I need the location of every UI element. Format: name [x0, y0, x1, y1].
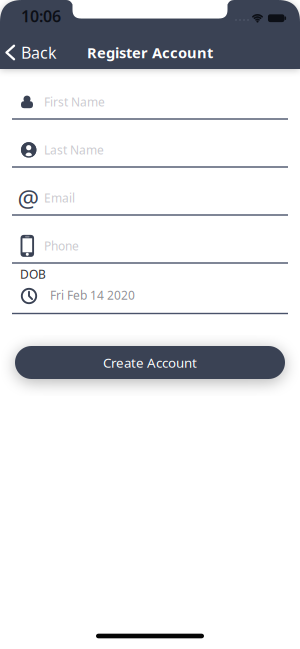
button[interactable]: Fri Feb 14 2020 [0, 266, 300, 315]
staticText: Back [21, 42, 57, 63]
button[interactable]: First Name [0, 71, 300, 120]
staticText: First Name [44, 94, 105, 110]
button[interactable]: Create Account [15, 346, 285, 379]
staticText: DOB [20, 266, 46, 282]
button[interactable]: Phone [0, 215, 300, 264]
staticText: Fri Feb 14 2020 [50, 287, 135, 303]
staticText: Register Account [87, 43, 213, 62]
staticText: 10:06 [21, 5, 61, 27]
staticText: Last Name [44, 142, 104, 158]
staticText: Phone [44, 238, 79, 254]
button[interactable]: Last Name [0, 119, 300, 168]
staticText: @ [17, 182, 39, 214]
staticText: Create Account [103, 354, 197, 371]
staticText: Email [44, 190, 75, 206]
button[interactable]: @ [0, 167, 300, 216]
button[interactable]: Back [6, 42, 76, 63]
